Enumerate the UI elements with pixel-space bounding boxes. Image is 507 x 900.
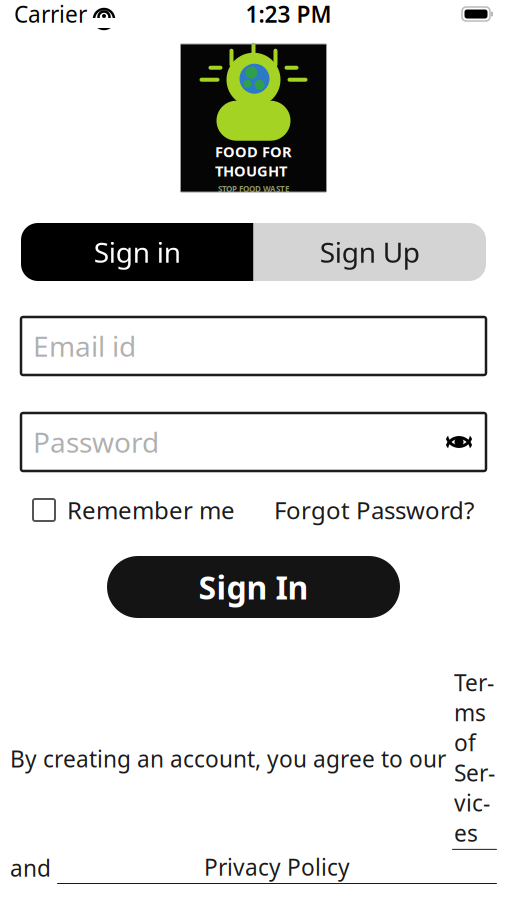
staticText: Email id (33, 327, 136, 365)
staticText: FOOD FOR THOUGHT (215, 142, 292, 181)
button[interactable]: Show password (444, 430, 474, 454)
button[interactable]: Forgot Password? (274, 494, 474, 526)
staticText: Privacy Policy (204, 852, 350, 882)
staticText: Password (33, 423, 159, 461)
staticText: Sign Up (320, 233, 420, 271)
staticText: Forgot Password? (274, 494, 474, 526)
staticText: Remember me (67, 494, 235, 526)
button[interactable]: Sign in (21, 223, 253, 281)
button[interactable]: Remember me (33, 494, 235, 526)
staticText: Sign in (94, 233, 181, 271)
staticText: Carrier (14, 0, 87, 29)
button[interactable]: Sign Up (253, 223, 486, 281)
staticText: Sign In (198, 566, 308, 608)
staticText: By creating an account, you agree to our (10, 743, 452, 774)
button[interactable]: Terms of Services (452, 667, 497, 850)
staticText: Terms of Services (454, 667, 495, 848)
staticText: and (10, 853, 57, 883)
button[interactable]: Sign In (107, 556, 400, 618)
staticText: 1:23 PM (245, 0, 331, 29)
staticText: STOP FOOD WASTE (218, 184, 289, 194)
button[interactable]: Privacy Policy (57, 852, 497, 884)
